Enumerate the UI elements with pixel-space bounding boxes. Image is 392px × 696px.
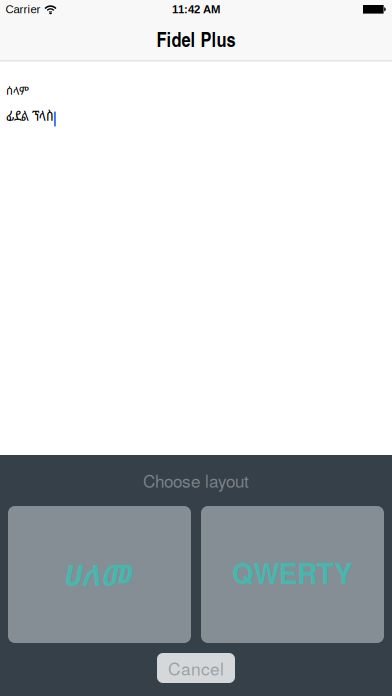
staticText: QWERTY <box>232 552 353 593</box>
staticText: Carrier <box>5 3 40 16</box>
staticText: Choose layout <box>143 468 249 493</box>
staticText: ሰላም <box>6 83 29 98</box>
staticText: ሀለመ <box>62 554 131 594</box>
button[interactable]: ሀለመ <box>8 506 191 643</box>
staticText: Cancel <box>168 656 224 680</box>
button[interactable]: Cancel <box>157 653 235 683</box>
staticText: Fidel Plus <box>156 25 235 53</box>
button[interactable]: QWERTY <box>201 506 384 643</box>
staticText: 11:42 AM <box>172 3 220 16</box>
staticText: ፊደል ፕላስ <box>6 105 54 125</box>
